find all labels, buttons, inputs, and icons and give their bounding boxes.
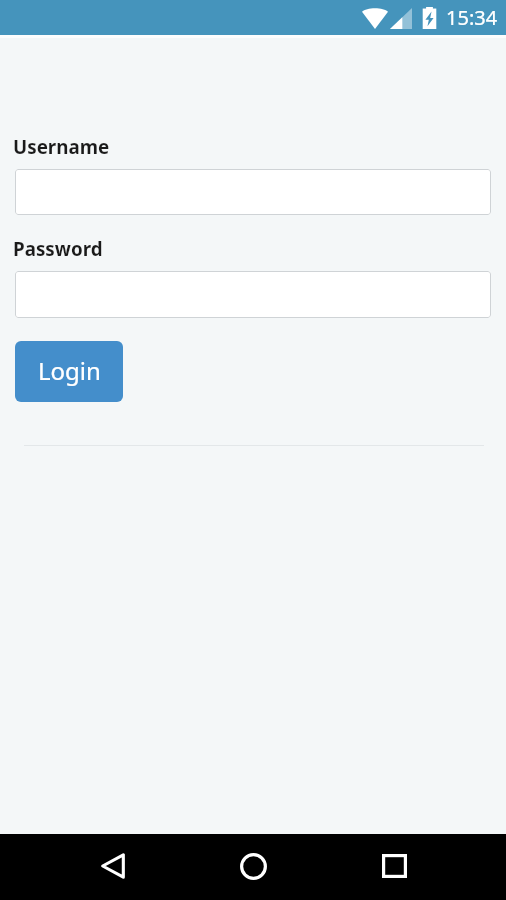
staticText: Login — [38, 354, 101, 387]
staticText: 15:34 — [446, 4, 498, 31]
button[interactable]: Login — [15, 341, 123, 402]
staticText: Password — [13, 236, 103, 262]
staticText: Username — [13, 134, 110, 160]
button[interactable]: Username input field — [15, 169, 491, 215]
button[interactable]: Recents — [370, 842, 418, 890]
button[interactable]: Back — [89, 842, 137, 890]
button[interactable]: Home — [229, 842, 277, 890]
button[interactable]: Password input field — [15, 271, 491, 318]
